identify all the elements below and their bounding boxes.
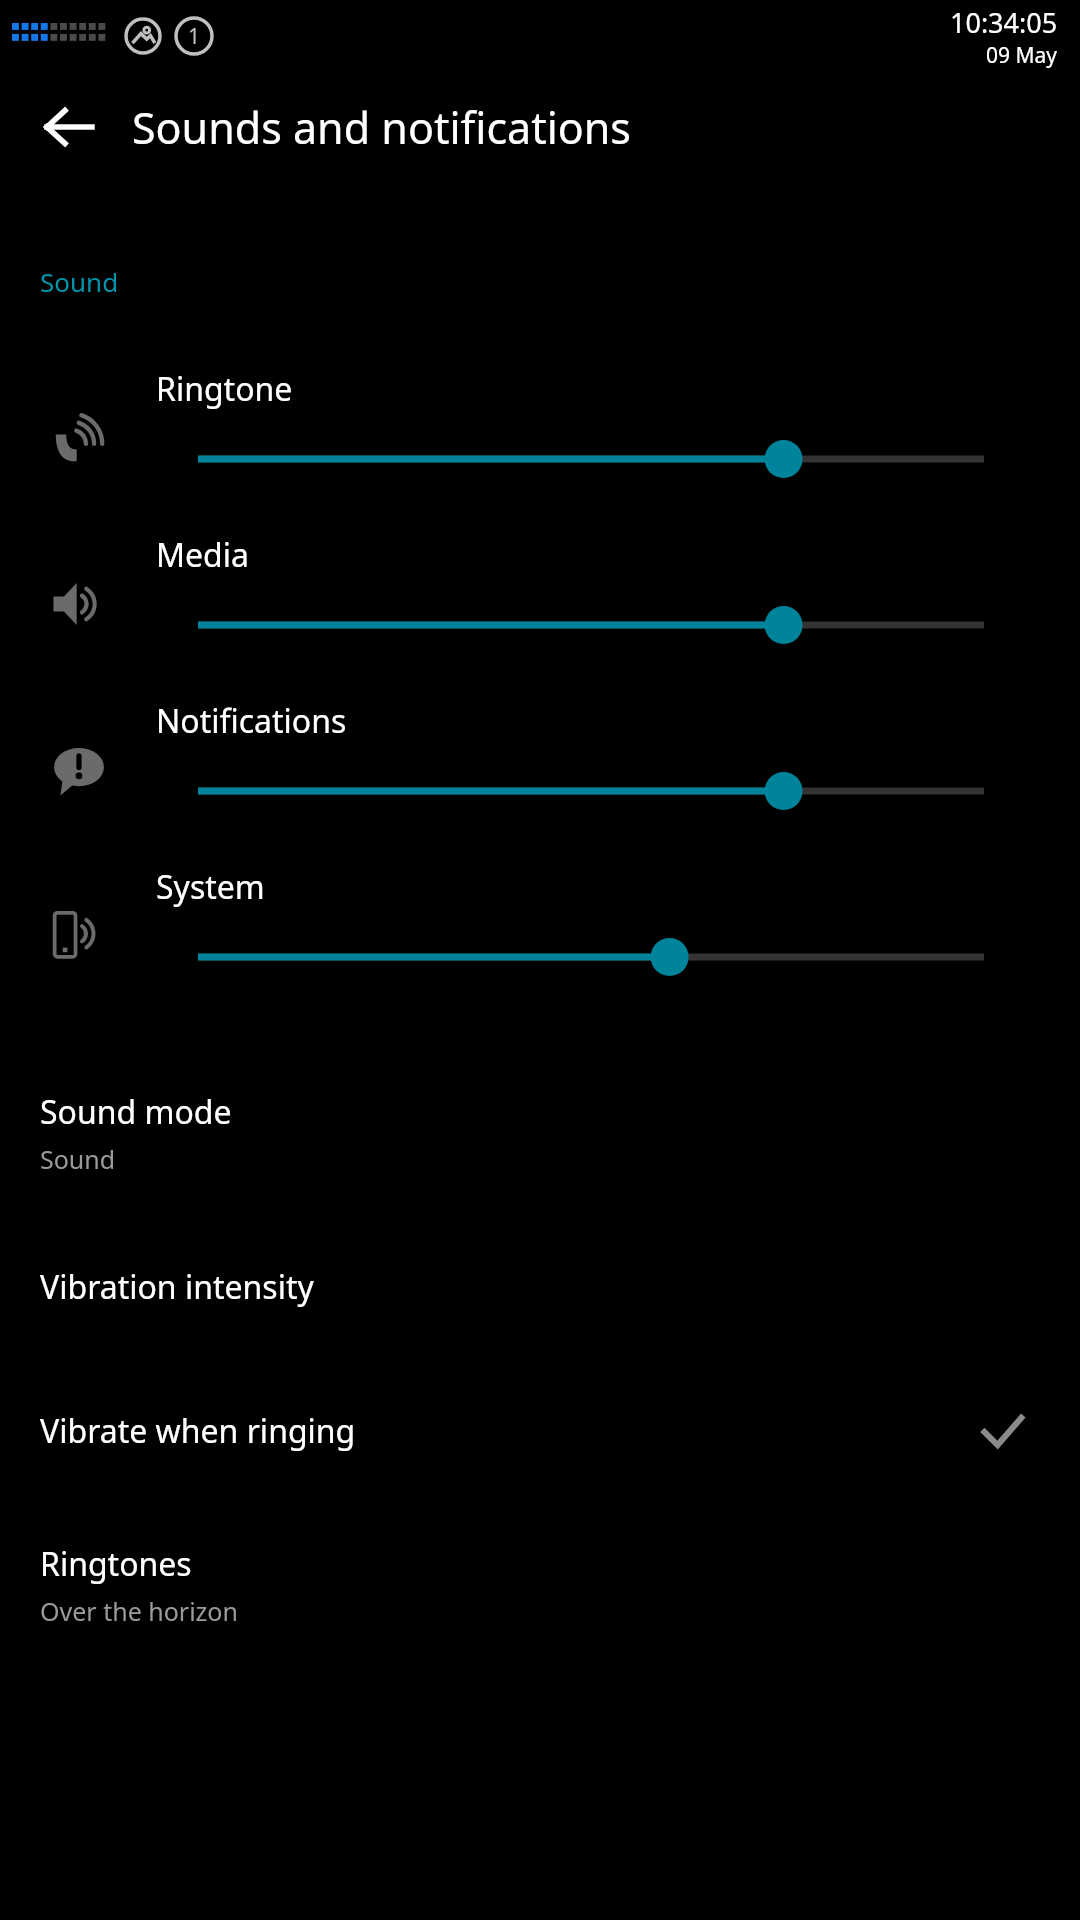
staticText: Media [156, 533, 249, 577]
button[interactable]: Ringtone [0, 339, 1080, 505]
staticText: Ringtones [40, 1542, 192, 1586]
staticText: 10:34:05 [950, 4, 1058, 41]
staticText: System [156, 865, 265, 909]
staticText: Over the horizon [40, 1594, 238, 1628]
staticText: Sound [40, 1142, 116, 1176]
button[interactable]: Media [0, 505, 1080, 671]
staticText: Notifications [156, 699, 347, 743]
button[interactable]: Sound mode [0, 1051, 1080, 1215]
button[interactable]: Vibration intensity [0, 1215, 1080, 1359]
staticText: 09 May [986, 41, 1058, 70]
staticText: Vibrate when ringing [40, 1409, 356, 1453]
staticText: Vibration intensity [40, 1265, 314, 1309]
button[interactable]: Notifications [0, 671, 1080, 837]
staticText: Ringtone [156, 367, 293, 411]
staticText: 1 [188, 22, 201, 51]
button[interactable]: System [0, 837, 1080, 1003]
staticText: Sound [40, 264, 119, 299]
staticText: Sound mode [40, 1090, 232, 1134]
staticText: Sounds and notifications [132, 98, 631, 157]
button[interactable]: Vibrate when ringing [0, 1359, 1080, 1503]
button[interactable]: Ringtones [0, 1503, 1080, 1667]
button[interactable]: Back [28, 86, 110, 168]
